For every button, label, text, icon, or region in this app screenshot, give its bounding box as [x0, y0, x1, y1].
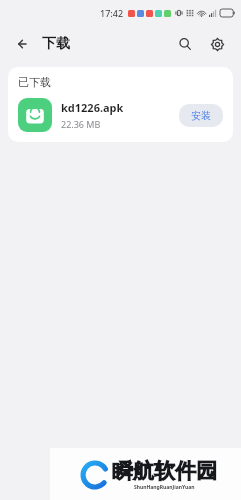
staticText: ShunHangRuanJianYuan — [134, 484, 195, 491]
button[interactable]: Back — [10, 31, 36, 57]
button[interactable]: Settings — [203, 30, 231, 58]
staticText: 已下载 — [18, 75, 51, 89]
button[interactable]: kd1226.apk — [18, 98, 223, 132]
staticText: 安装 — [191, 109, 211, 122]
button[interactable]: 安装 — [179, 104, 223, 127]
staticText: 22.36 MB — [61, 118, 101, 130]
staticText: 下载 — [42, 35, 70, 53]
staticText: kd1226.apk — [61, 100, 124, 115]
staticText: 瞬航软件园 — [112, 458, 217, 484]
staticText: 17:42 — [100, 7, 124, 19]
button[interactable]: Search — [171, 30, 199, 58]
